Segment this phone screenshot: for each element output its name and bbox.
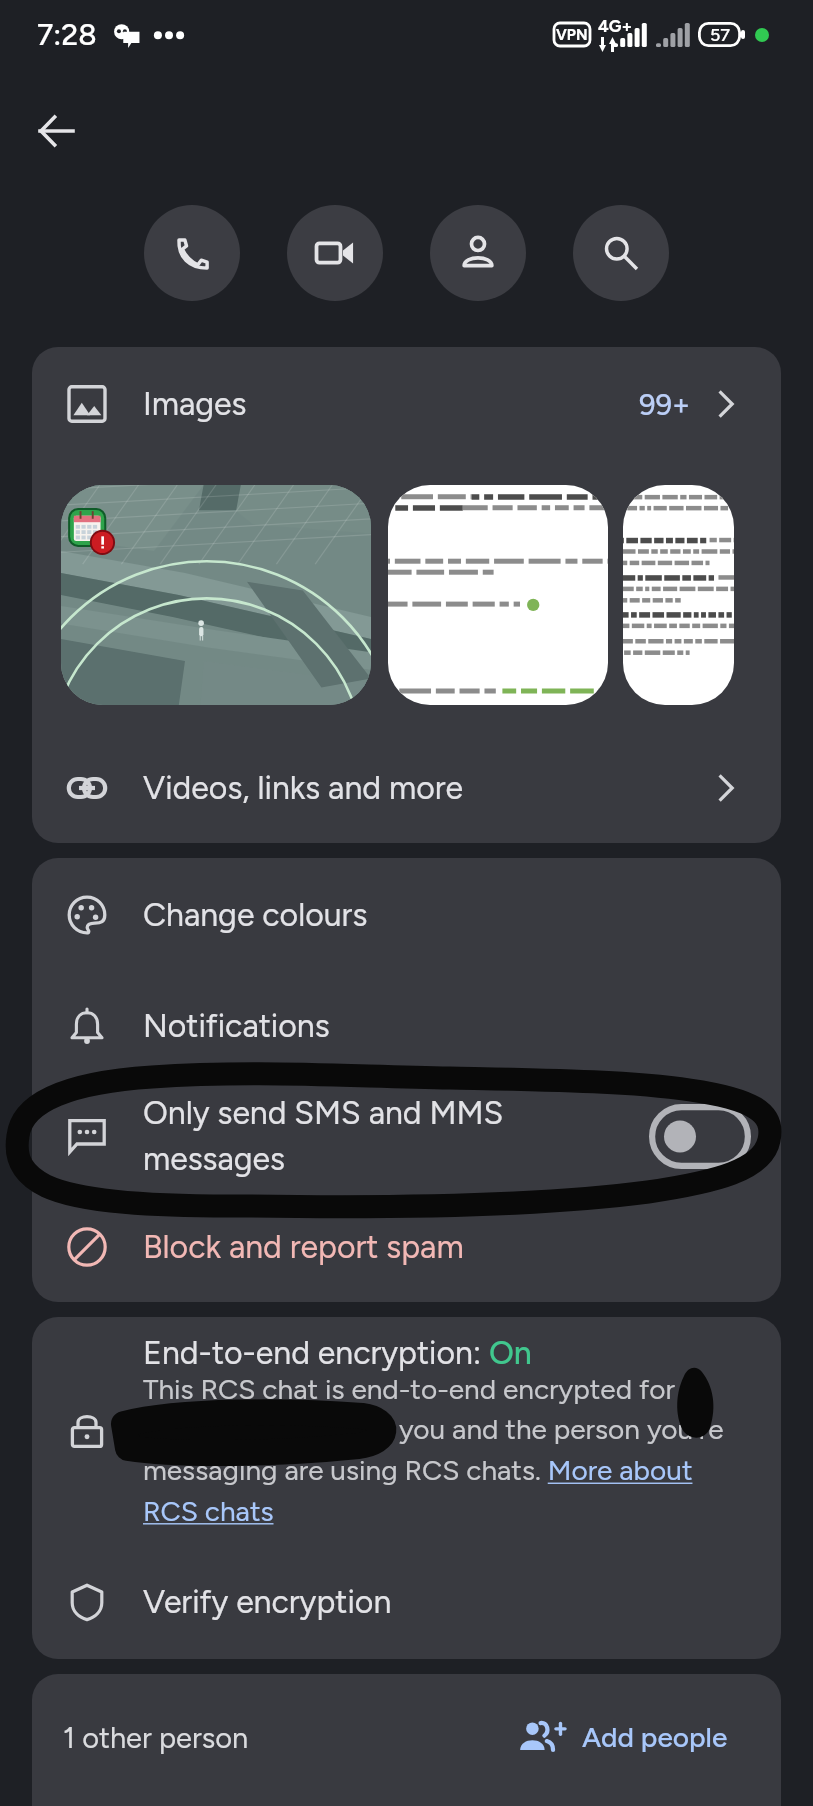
staticText: This RCS chat is end-to-end encrypted fo… bbox=[143, 1372, 733, 1528]
button[interactable]: Notifications bbox=[32, 971, 781, 1080]
staticText: Only send SMS and MMS messages bbox=[143, 1094, 504, 1178]
staticText: Block and report spam bbox=[143, 1228, 464, 1266]
button[interactable]: Images bbox=[32, 347, 781, 461]
staticText: Change colours bbox=[143, 896, 368, 934]
button[interactable]: Add people bbox=[506, 1710, 740, 1764]
button[interactable]: End-to-end encryption: On bbox=[32, 1317, 781, 1545]
button[interactable]: Block and report spam bbox=[32, 1192, 781, 1302]
staticText: Images bbox=[143, 385, 247, 423]
button[interactable]: Shared image bbox=[388, 485, 608, 705]
button[interactable]: Back bbox=[12, 87, 100, 175]
button[interactable]: Only send SMS and MMS messages bbox=[32, 1080, 781, 1192]
staticText: Notifications bbox=[143, 1007, 330, 1045]
button[interactable]: Call bbox=[144, 205, 240, 301]
button[interactable]: Search bbox=[573, 205, 669, 301]
button[interactable]: Contact details bbox=[430, 205, 526, 301]
staticText: 1 other person bbox=[63, 1720, 249, 1755]
staticText: 57 bbox=[710, 24, 731, 46]
staticText: End-to-end encryption: On bbox=[143, 1334, 532, 1372]
staticText: 99+ bbox=[639, 387, 691, 422]
button[interactable]: Verify encryption bbox=[32, 1545, 781, 1659]
button[interactable]: Video call bbox=[287, 205, 383, 301]
button[interactable]: Videos, links and more bbox=[32, 733, 781, 843]
staticText: 4G+ bbox=[598, 16, 633, 36]
button[interactable]: Shared image bbox=[61, 485, 371, 705]
staticText: Verify encryption bbox=[143, 1583, 392, 1621]
staticText: Add people bbox=[582, 1720, 728, 1754]
staticText: Videos, links and more bbox=[143, 769, 464, 807]
button[interactable]: Only send SMS and MMS messages toggle bbox=[649, 1104, 751, 1169]
staticText: VPN bbox=[556, 26, 588, 44]
button[interactable]: Shared image bbox=[623, 485, 734, 705]
button[interactable]: Change colours bbox=[32, 858, 781, 971]
staticText: 7:28 bbox=[37, 16, 97, 52]
